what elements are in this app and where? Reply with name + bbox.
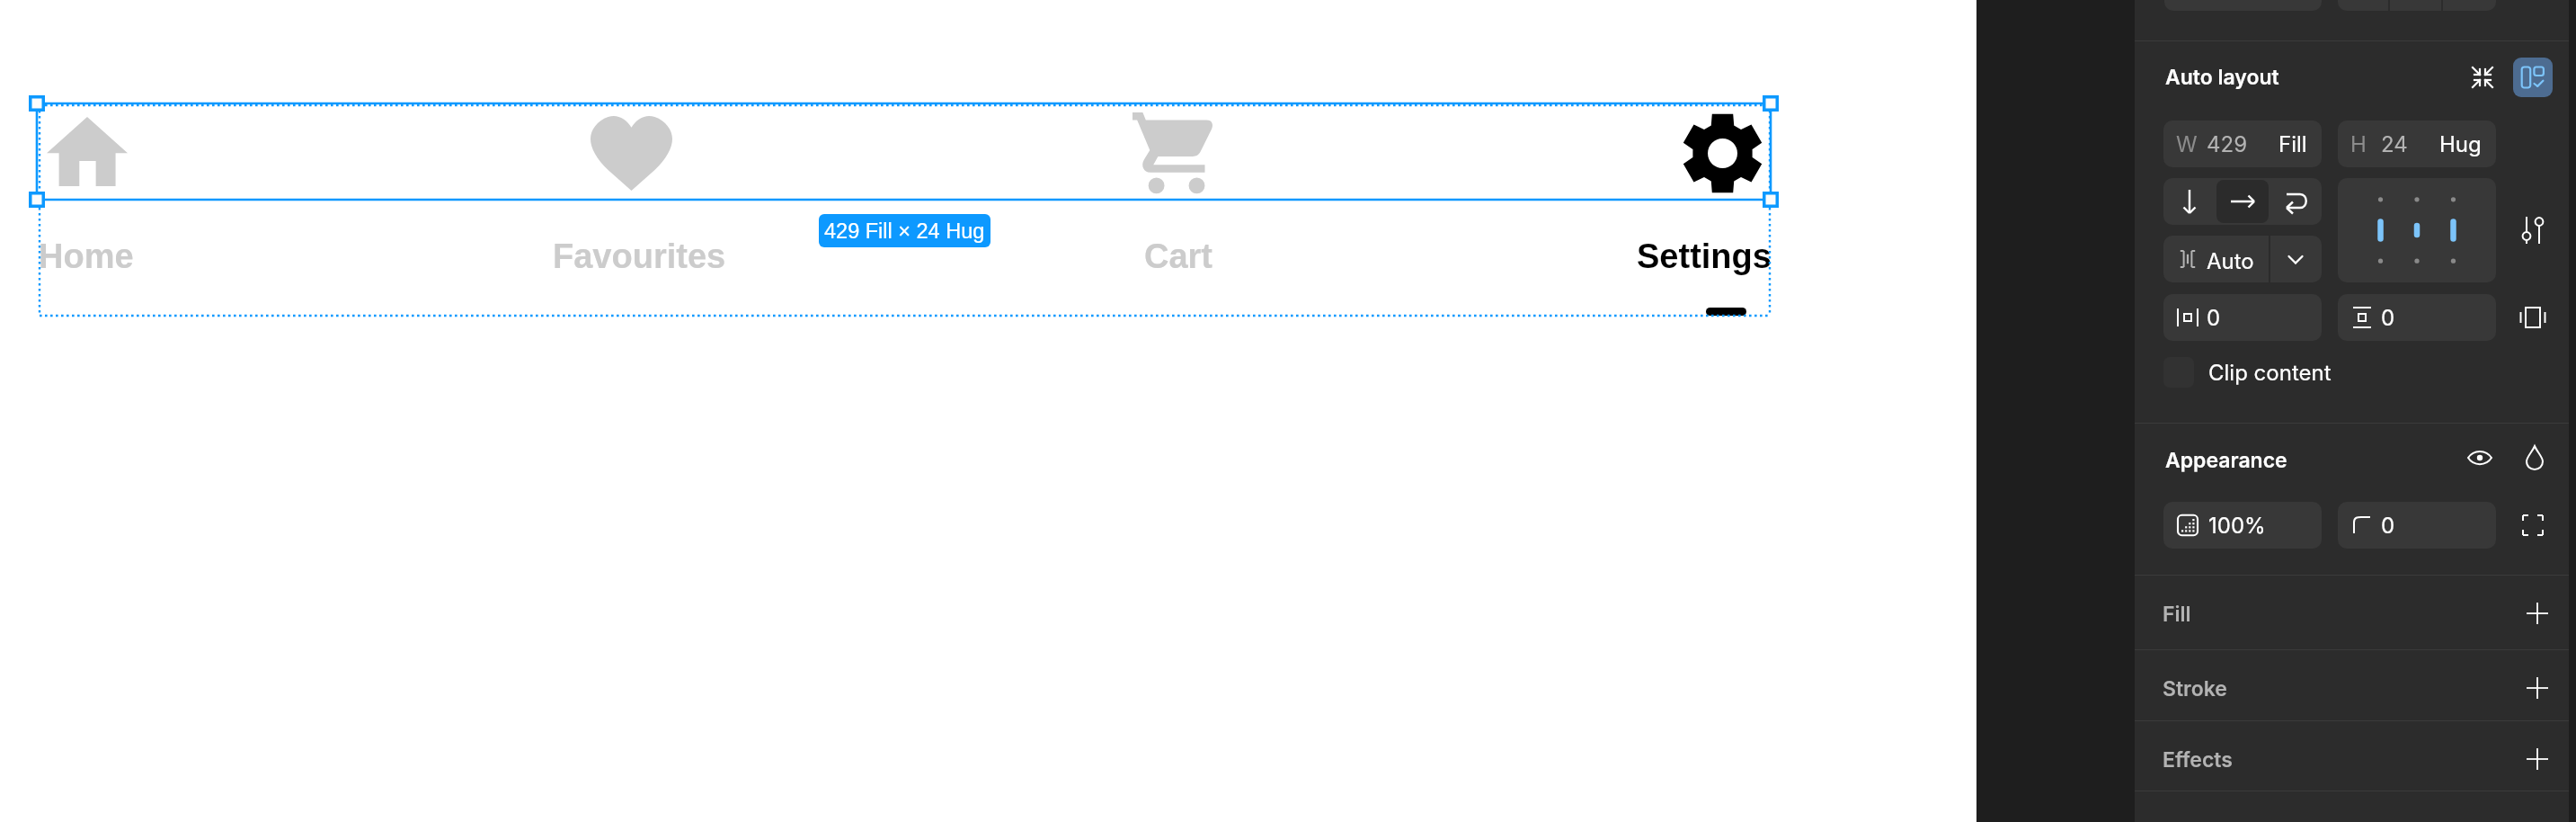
button[interactable]: Add Effects <box>2516 737 2559 781</box>
button[interactable]: Horizontal layout <box>2216 180 2269 223</box>
staticText: 0 <box>2381 513 2395 539</box>
staticText: Fill <box>2278 131 2307 157</box>
button[interactable]: 100% <box>2163 502 2322 549</box>
button[interactable]: 0 <box>2338 502 2496 549</box>
button[interactable]: Individual corners <box>2511 504 2554 547</box>
staticText: Appearance <box>2165 448 2287 473</box>
staticText: Favourites <box>553 237 726 275</box>
button[interactable]: Favourites <box>553 229 726 283</box>
button[interactable]: Fill <box>2135 575 2569 648</box>
button[interactable]: Settings <box>1684 113 1761 193</box>
staticText: 429 <box>2207 131 2248 157</box>
button[interactable]: Add Fill <box>2516 592 2559 635</box>
button[interactable]: Add Stroke <box>2516 666 2559 710</box>
button[interactable]: Cart <box>1133 112 1213 193</box>
staticText: Stroke <box>2163 676 2227 701</box>
staticText: H <box>2350 131 2367 157</box>
staticText: 24 <box>2381 131 2408 157</box>
staticText: Fill <box>2163 602 2191 627</box>
staticText: Settings <box>1637 237 1772 275</box>
button[interactable]: Home <box>47 117 128 186</box>
button[interactable]: Alignment <box>2338 178 2496 282</box>
staticText: 429 Fill × 24 Hug <box>824 219 985 243</box>
staticText: Clip content <box>2208 360 2332 386</box>
staticText: 0 <box>2207 305 2221 331</box>
button[interactable]: Auto layout settings <box>2513 58 2553 97</box>
button[interactable]: Home <box>39 229 134 283</box>
button[interactable]: Cart <box>1144 229 1213 283</box>
button[interactable]: Blend mode <box>2513 436 2556 479</box>
staticText: Cart <box>1144 237 1213 275</box>
button[interactable]: Clip content <box>2163 350 2332 395</box>
staticText: Auto layout <box>2165 65 2279 90</box>
button[interactable]: Advanced layout <box>2511 209 2554 252</box>
button[interactable]: 0 <box>2163 294 2322 341</box>
staticText: W <box>2176 131 2198 157</box>
staticText: Auto <box>2207 248 2254 274</box>
button[interactable]: Favourites <box>591 115 672 191</box>
button[interactable]: Visibility <box>2458 436 2501 479</box>
button[interactable]: Independent padding <box>2511 296 2554 339</box>
button[interactable]: 0 <box>2338 294 2496 341</box>
button[interactable]: Effects <box>2135 720 2569 793</box>
staticText: 0 <box>2381 305 2395 331</box>
staticText: Home <box>39 237 134 275</box>
button[interactable]: Collapse <box>2461 56 2504 99</box>
staticText: 100% <box>2208 513 2266 539</box>
button[interactable]: Auto <box>2163 236 2322 282</box>
button[interactable]: W <box>2163 121 2322 167</box>
staticText: Hug <box>2439 131 2482 157</box>
staticText: Effects <box>2163 747 2233 773</box>
button[interactable]: Stroke <box>2135 649 2569 722</box>
button[interactable]: Wrap layout <box>2270 178 2322 225</box>
button[interactable]: Settings <box>1637 229 1772 283</box>
button[interactable]: Vertical layout <box>2163 178 2216 225</box>
button[interactable]: H <box>2338 121 2496 167</box>
